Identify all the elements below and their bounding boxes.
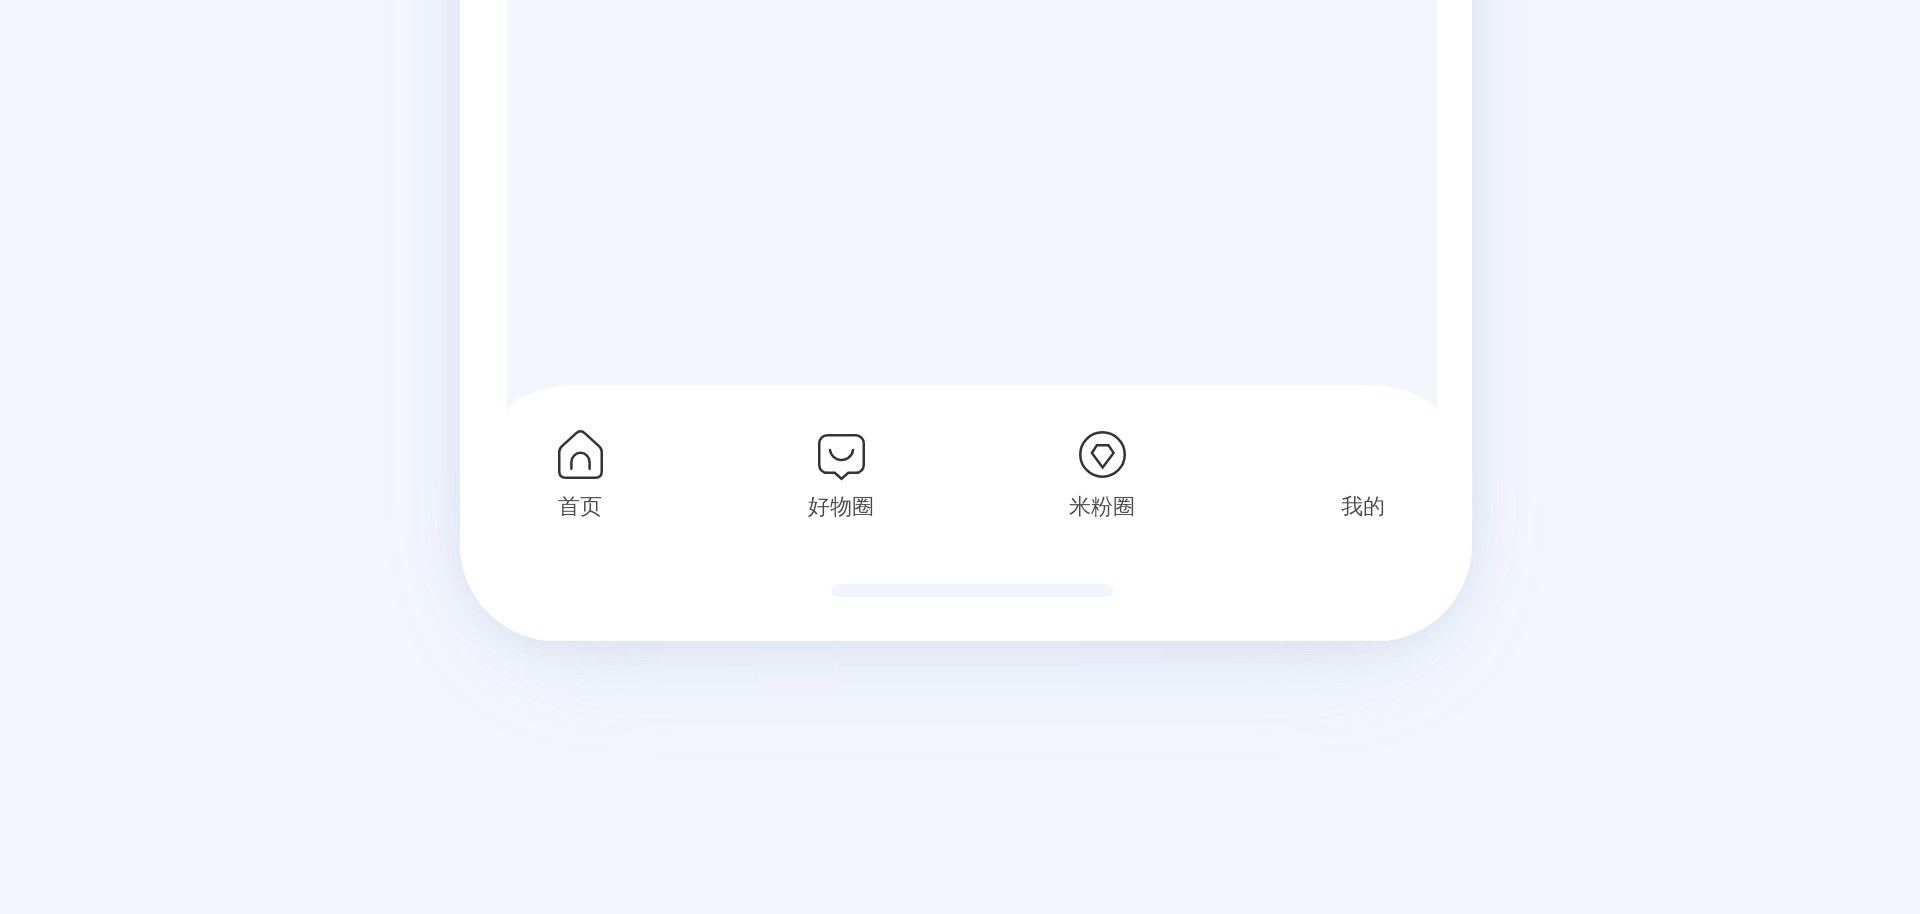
staticText: 首页: [558, 493, 602, 521]
staticText: 好物圈: [808, 493, 874, 521]
staticText: 米粉圈: [1069, 493, 1135, 521]
button[interactable]: Home: [515, 412, 645, 538]
staticText: 我的: [1341, 493, 1385, 521]
button[interactable]: Goods circle: [776, 412, 906, 538]
button[interactable]: Profile: [1298, 412, 1428, 538]
button[interactable]: Fans circle: [1037, 412, 1167, 538]
